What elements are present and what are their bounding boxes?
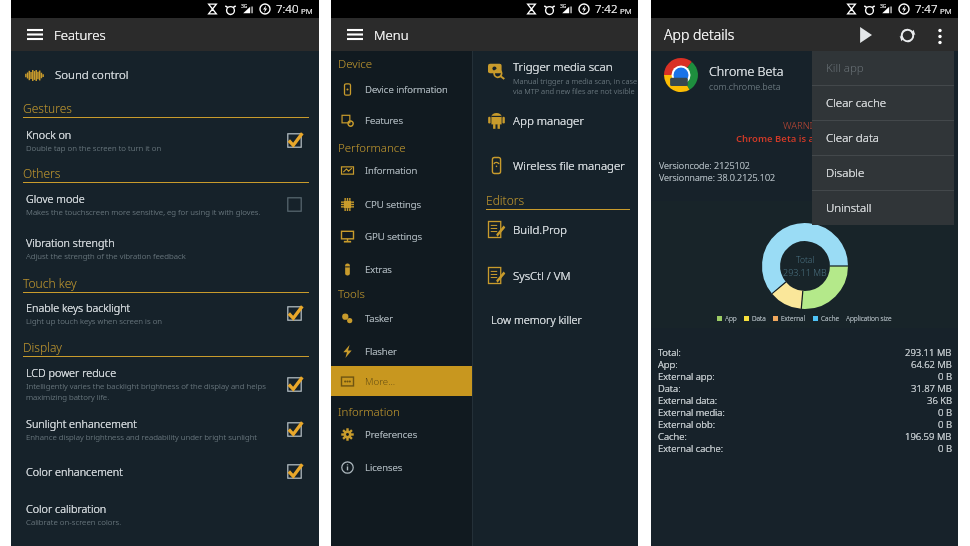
staticText: Enhance display brightness and readabili… [26, 432, 271, 443]
button[interactable]: Build.Prop [473, 221, 638, 238]
staticText: Total [796, 254, 815, 266]
staticText: Adjust the strength of the vibration fee… [26, 251, 271, 262]
button[interactable]: Vibration strength [11, 230, 319, 275]
staticText: Total: [658, 346, 681, 358]
staticText: LCD power reduce [26, 365, 117, 380]
staticText: Calibrate on-screen colors. [26, 517, 271, 528]
button[interactable]: Clear data [812, 121, 954, 155]
staticText: 7:40 [276, 1, 299, 17]
button[interactable]: CPU settings [331, 189, 472, 219]
staticText: Makes the touchscreen more sensitive, eg… [26, 207, 271, 218]
staticText: Data: [658, 382, 681, 394]
button[interactable]: Refresh [894, 22, 920, 48]
button[interactable]: Color enhancement [11, 455, 319, 494]
button[interactable]: Uninstall [812, 191, 954, 225]
button[interactable]: Low memory killer [473, 307, 638, 331]
staticText: Low memory killer [491, 312, 582, 327]
button[interactable]: GPU settings [331, 221, 472, 251]
staticText: Cache: [658, 430, 687, 442]
button[interactable]: Clear cache [812, 86, 954, 120]
staticText: Clear cache [826, 95, 887, 111]
staticText: Versionname: 38.0.2125.102 [659, 171, 776, 183]
staticText: Chrome Beta [709, 63, 784, 80]
staticText: Features [365, 114, 403, 127]
button[interactable]: LCD power reduce [11, 357, 319, 411]
staticText: More... [365, 375, 396, 388]
button[interactable]: Knock on [11, 118, 319, 165]
button[interactable]: Trigger media scan [473, 59, 638, 96]
staticText: Tasker [365, 312, 394, 325]
staticText: Features [54, 26, 106, 44]
staticText: Color enhancement [26, 464, 123, 479]
button[interactable]: Flasher [331, 336, 472, 366]
button[interactable]: Features [331, 105, 472, 135]
staticText: External obb: [658, 418, 715, 430]
button[interactable]: Kill app [812, 51, 954, 85]
button[interactable]: Glove mode [11, 183, 319, 230]
button[interactable]: Enable keys backlight [11, 293, 319, 339]
staticText: App details [664, 25, 735, 44]
staticText: Preferences [365, 428, 418, 441]
staticText: Licenses [365, 461, 403, 474]
staticText: GPU settings [365, 230, 423, 243]
staticText: Gestures [23, 100, 72, 116]
staticText: Editors [486, 192, 525, 208]
button[interactable]: Sunlight enhancement [11, 411, 319, 455]
staticText: Display [23, 339, 62, 355]
staticText: SysCtl / VM [513, 268, 571, 284]
staticText: com.chrome.beta [709, 80, 781, 92]
staticText: PM [940, 5, 952, 16]
staticText: 36 KB [927, 394, 952, 406]
staticText: Color calibration [26, 501, 107, 516]
staticText: Sunlight enhancement [26, 416, 137, 431]
staticText: Disable [826, 165, 865, 181]
button[interactable]: Open navigation drawer [25, 27, 45, 42]
staticText: Sound control [55, 67, 129, 83]
staticText: 3G [880, 3, 887, 10]
staticText: CPU settings [365, 198, 422, 211]
staticText: Trigger media scan [513, 59, 613, 75]
staticText: 0 B [938, 442, 952, 454]
button[interactable]: App manager [473, 112, 638, 129]
button[interactable]: Open navigation drawer [345, 27, 365, 42]
staticText: Uninstall [826, 200, 872, 216]
button[interactable]: Sound control [11, 62, 319, 88]
staticText: Device [338, 56, 373, 72]
staticText: 3G [241, 3, 248, 10]
staticText: 0 B [938, 418, 952, 430]
staticText: Manual trigger a media scan, in case you… [513, 76, 638, 96]
staticText: External app: [658, 370, 715, 382]
staticText: Others [23, 165, 61, 181]
button[interactable]: Preferences [331, 419, 472, 449]
staticText: WARNING [783, 119, 827, 132]
staticText: Vibration strength [26, 235, 115, 250]
button[interactable]: Wireless file manager [473, 157, 638, 174]
button[interactable]: Licenses [331, 452, 472, 482]
button[interactable]: Disable [812, 156, 954, 190]
staticText: Chrome Beta is a system app! [736, 132, 873, 145]
staticText: 7:42 [595, 1, 618, 17]
button[interactable]: Color calibration [11, 494, 319, 538]
staticText: External cache: [658, 442, 724, 454]
button[interactable]: Extras [331, 254, 472, 284]
button[interactable]: SysCtl / VM [473, 267, 638, 284]
staticText: Extras [365, 263, 392, 276]
button[interactable]: Information [331, 155, 472, 185]
button[interactable]: Device information [331, 74, 472, 104]
staticText: External [781, 314, 806, 323]
staticText: Double tap on the screen to turn it on [26, 143, 271, 154]
button[interactable]: More options [929, 24, 951, 46]
button[interactable]: More... [331, 366, 472, 396]
staticText: Menu [374, 26, 409, 44]
staticText: Performance [338, 140, 406, 156]
staticText: Clear data [826, 130, 879, 146]
staticText: Enable keys backlight [26, 300, 131, 315]
staticText: Wireless file manager [513, 158, 625, 174]
staticText: 0 B [938, 370, 952, 382]
button[interactable]: Tasker [331, 303, 472, 333]
staticText: Build.Prop [513, 222, 567, 238]
button[interactable]: Launch app [852, 22, 878, 48]
staticText: Knock on [26, 127, 72, 142]
staticText: Intelligently varies the backlight brigh… [26, 381, 271, 403]
staticText: Versioncode: 2125102 [659, 159, 750, 171]
